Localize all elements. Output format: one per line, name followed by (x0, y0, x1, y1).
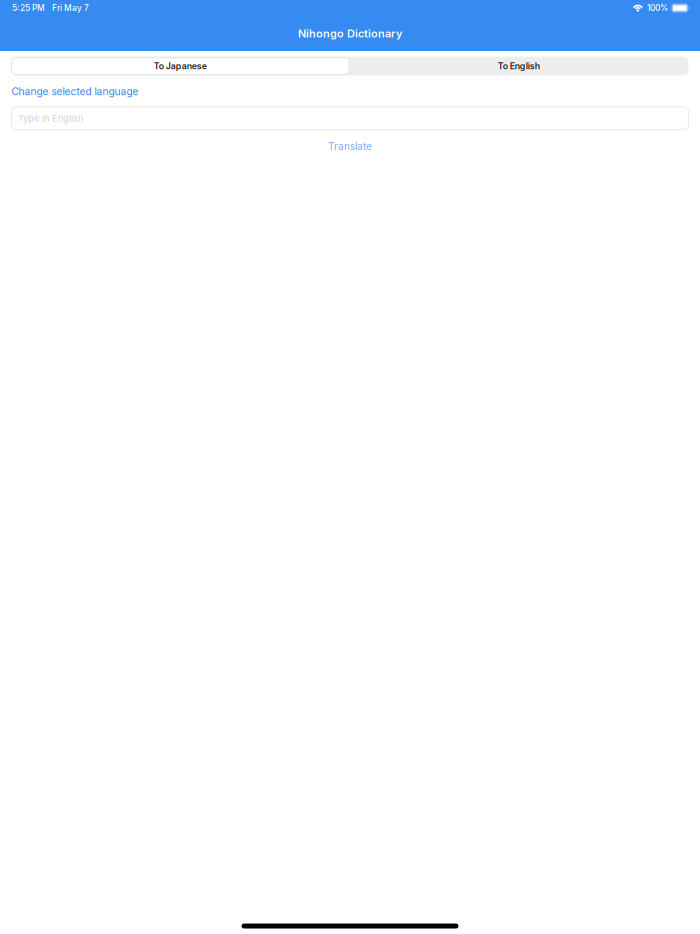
button[interactable]: Change selected language (11, 84, 688, 98)
staticText: Nihongo Dictionary (298, 27, 402, 40)
staticText: Type in English (18, 113, 83, 124)
button[interactable]: To Japanese (11, 57, 349, 76)
button[interactable]: To English (349, 57, 688, 76)
staticText: To Japanese (154, 61, 207, 71)
staticText: 5:25 PM (12, 3, 45, 13)
staticText: Change selected language (11, 85, 138, 98)
staticText: To English (498, 61, 540, 71)
button[interactable]: Type in English (11, 107, 688, 130)
staticText: 100% (647, 3, 668, 13)
button[interactable]: Translate (320, 139, 380, 153)
staticText: Translate (328, 140, 372, 152)
staticText: Fri May 7 (52, 3, 89, 13)
